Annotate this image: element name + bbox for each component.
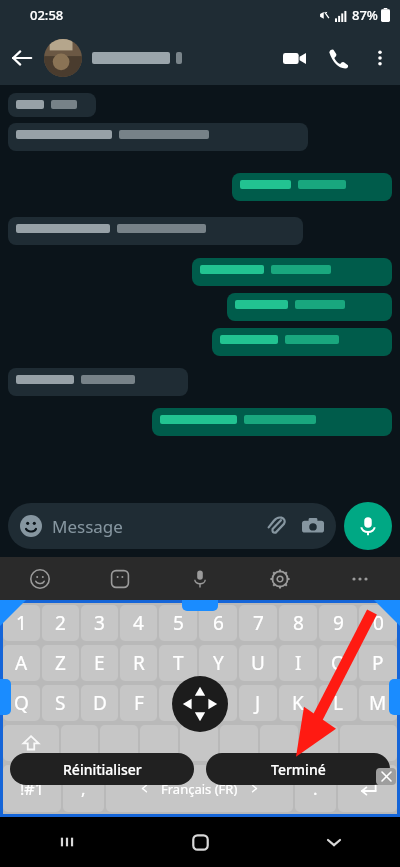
- button[interactable]: S: [42, 685, 79, 721]
- button[interactable]: Voice call: [316, 36, 360, 80]
- button[interactable]: .: [295, 765, 336, 812]
- button[interactable]: P: [359, 645, 397, 681]
- button[interactable]: T: [159, 645, 197, 681]
- button[interactable]: [8, 368, 188, 396]
- staticText: 4: [133, 610, 144, 636]
- button[interactable]: Hide keyboard: [267, 817, 400, 867]
- button[interactable]: Z: [42, 645, 79, 681]
- button[interactable]: Stickers: [80, 557, 160, 600]
- button[interactable]: Réinitialiser: [10, 753, 194, 785]
- staticText: 9: [333, 610, 344, 636]
- staticText: Q: [14, 690, 29, 716]
- button[interactable]: Close: [376, 768, 396, 785]
- button[interactable]: U: [239, 645, 277, 681]
- button[interactable]: Backspace: [340, 725, 397, 761]
- button[interactable]: 7: [239, 605, 277, 641]
- button[interactable]: Home: [134, 817, 267, 867]
- staticText: 0: [373, 610, 384, 636]
- button[interactable]: [180, 725, 218, 761]
- button[interactable]: 6: [199, 605, 237, 641]
- button[interactable]: L: [319, 685, 357, 721]
- button[interactable]: Resize left: [0, 679, 11, 715]
- button[interactable]: 1: [3, 605, 40, 641]
- button[interactable]: More options: [360, 38, 400, 78]
- button[interactable]: J: [239, 685, 277, 721]
- staticText: 02:58: [30, 6, 64, 24]
- button[interactable]: Settings: [240, 557, 320, 600]
- button[interactable]: Video call: [272, 36, 316, 80]
- button[interactable]: Enter: [338, 765, 397, 812]
- button[interactable]: Shift: [3, 725, 59, 761]
- staticText: L: [333, 690, 343, 716]
- staticText: 5: [173, 610, 184, 636]
- button[interactable]: Contact name: [92, 52, 272, 64]
- button[interactable]: [152, 408, 392, 436]
- button[interactable]: Message: [8, 503, 336, 549]
- button[interactable]: Back: [0, 36, 44, 80]
- staticText: 6: [213, 610, 224, 636]
- staticText: E: [94, 650, 105, 676]
- staticText: 1: [16, 610, 27, 636]
- button[interactable]: [100, 725, 138, 761]
- button[interactable]: [212, 328, 392, 356]
- staticText: A: [15, 650, 28, 676]
- button[interactable]: Terminé: [206, 753, 390, 785]
- button[interactable]: [220, 725, 258, 761]
- button[interactable]: 0: [359, 605, 397, 641]
- button[interactable]: [140, 725, 178, 761]
- staticText: H: [211, 690, 226, 716]
- staticText: F: [134, 690, 144, 716]
- button[interactable]: Resize top: [182, 600, 218, 611]
- button[interactable]: 3: [81, 605, 118, 641]
- button[interactable]: O: [319, 645, 357, 681]
- staticText: Terminé: [271, 760, 326, 779]
- staticText: O: [331, 650, 346, 676]
- staticText: S: [55, 690, 66, 716]
- button[interactable]: Voice input: [160, 557, 240, 600]
- button[interactable]: [232, 173, 392, 201]
- button[interactable]: Recent apps: [0, 817, 134, 867]
- button[interactable]: E: [81, 645, 118, 681]
- button[interactable]: Profile photo: [44, 39, 82, 77]
- button[interactable]: ,: [63, 765, 104, 812]
- button[interactable]: A: [3, 645, 40, 681]
- staticText: 7: [253, 610, 264, 636]
- button[interactable]: [192, 258, 392, 286]
- button[interactable]: Y: [199, 645, 237, 681]
- button[interactable]: R: [120, 645, 157, 681]
- button[interactable]: Q: [3, 685, 40, 721]
- button[interactable]: 5: [159, 605, 197, 641]
- staticText: D: [93, 690, 107, 716]
- staticText: 8: [293, 610, 304, 636]
- button[interactable]: G: [159, 685, 197, 721]
- button[interactable]: I: [279, 645, 317, 681]
- staticText: ,: [81, 777, 86, 800]
- staticText: 2: [55, 610, 66, 636]
- button[interactable]: Emoji: [0, 557, 80, 600]
- button[interactable]: 2: [42, 605, 79, 641]
- button[interactable]: H: [199, 685, 237, 721]
- button[interactable]: [260, 725, 298, 761]
- button[interactable]: Voice message: [344, 502, 392, 550]
- button[interactable]: M: [359, 685, 397, 721]
- button[interactable]: [61, 725, 98, 761]
- button[interactable]: 9: [319, 605, 357, 641]
- button[interactable]: [8, 123, 308, 151]
- button[interactable]: 8: [279, 605, 317, 641]
- button[interactable]: Français (FR): [106, 765, 293, 812]
- button[interactable]: [300, 725, 338, 761]
- staticText: 87%: [352, 6, 378, 24]
- button[interactable]: D: [81, 685, 118, 721]
- button[interactable]: !#1: [3, 765, 61, 812]
- staticText: K: [292, 690, 304, 716]
- button[interactable]: More: [320, 557, 400, 600]
- button[interactable]: K: [279, 685, 317, 721]
- button[interactable]: Move keyboard: [172, 676, 228, 732]
- button[interactable]: [8, 217, 303, 245]
- button[interactable]: F: [120, 685, 157, 721]
- button[interactable]: [8, 93, 96, 117]
- button[interactable]: 4: [120, 605, 157, 641]
- button[interactable]: [227, 293, 392, 321]
- staticText: .: [313, 777, 318, 800]
- button[interactable]: Resize right: [389, 679, 400, 715]
